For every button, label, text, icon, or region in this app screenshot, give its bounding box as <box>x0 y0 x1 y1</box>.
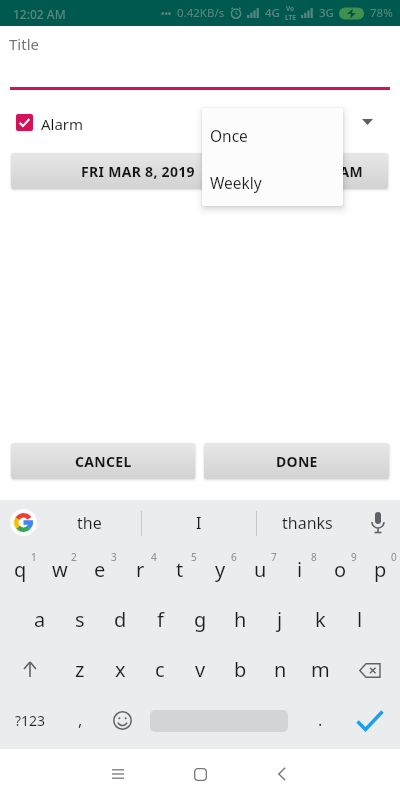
button[interactable] <box>100 695 144 745</box>
staticText: b <box>234 656 247 683</box>
button[interactable]: 12:02 AM <box>272 153 388 189</box>
staticText: ••• <box>161 7 172 19</box>
staticText: 7 <box>271 550 277 564</box>
button[interactable]: h <box>220 594 260 644</box>
button[interactable]: q <box>0 544 40 594</box>
button[interactable] <box>352 110 382 134</box>
button[interactable]: w <box>40 544 80 594</box>
button[interactable] <box>365 510 391 536</box>
staticText: a <box>34 606 46 633</box>
staticText: l <box>357 606 363 633</box>
button[interactable]: DONE <box>204 443 389 479</box>
staticText: Title <box>9 34 39 54</box>
staticText: Weekly <box>210 172 262 193</box>
staticText: t <box>176 556 184 583</box>
button[interactable]: m <box>300 644 340 694</box>
staticText: 4 <box>151 550 157 564</box>
staticText: CANCEL <box>75 452 132 471</box>
button[interactable] <box>340 695 400 745</box>
button[interactable]: a <box>20 594 60 644</box>
button[interactable] <box>262 754 302 794</box>
button[interactable]: . <box>300 695 340 745</box>
button[interactable]: y <box>200 544 240 594</box>
staticText: 5 <box>191 550 197 564</box>
button[interactable]: Alarm <box>16 114 84 131</box>
staticText: e <box>94 556 106 583</box>
button[interactable]: k <box>300 594 340 644</box>
staticText: q <box>14 556 27 583</box>
staticText: Vo <box>286 4 295 13</box>
button[interactable]: d <box>100 594 140 644</box>
button[interactable] <box>180 754 220 794</box>
button[interactable]: v <box>180 644 220 694</box>
button[interactable]: x <box>100 644 140 694</box>
staticText: i <box>297 556 303 583</box>
staticText: 8 <box>311 550 317 564</box>
staticText: m <box>311 656 330 683</box>
button[interactable] <box>0 645 60 695</box>
button[interactable]: i <box>280 544 320 594</box>
button[interactable]: the <box>48 500 130 545</box>
button[interactable]: j <box>260 594 300 644</box>
staticText: o <box>334 556 347 583</box>
button[interactable] <box>340 645 400 695</box>
button[interactable]: t <box>160 544 200 594</box>
staticText: LTE <box>285 13 296 22</box>
staticText: . <box>318 709 323 731</box>
button[interactable]: u <box>240 544 280 594</box>
staticText: w <box>52 556 68 583</box>
button[interactable]: FRI MAR 8, 2019 <box>11 153 265 189</box>
staticText: 2 <box>71 550 77 564</box>
staticText: 4G <box>265 5 280 21</box>
staticText: the <box>77 512 102 534</box>
staticText: 3G <box>319 5 334 21</box>
staticText: Once <box>210 125 248 146</box>
button[interactable]: CANCEL <box>11 443 195 479</box>
button[interactable]: Weekly <box>202 159 343 206</box>
button[interactable]: p <box>360 544 400 594</box>
staticText: ?123 <box>15 711 46 730</box>
button[interactable]: Once <box>202 112 343 159</box>
staticText: 0 <box>391 550 397 564</box>
button[interactable]: l <box>340 594 380 644</box>
button[interactable]: z <box>60 644 100 694</box>
staticText: Alarm <box>41 114 84 131</box>
staticText: k <box>315 606 326 633</box>
button[interactable]: o <box>320 544 360 594</box>
button[interactable]: r <box>120 544 160 594</box>
staticText: f <box>157 606 164 633</box>
button[interactable]: I <box>142 500 256 545</box>
button[interactable]: b <box>220 644 260 694</box>
staticText: x <box>115 656 126 683</box>
staticText: z <box>75 656 85 683</box>
button[interactable]: g <box>180 594 220 644</box>
button[interactable]: s <box>60 594 100 644</box>
button[interactable]: thanks <box>257 500 357 545</box>
button[interactable]: f <box>140 594 180 644</box>
staticText: h <box>234 606 247 633</box>
staticText: 6 <box>231 550 237 564</box>
staticText: r <box>136 556 145 583</box>
staticText: n <box>274 656 287 683</box>
button[interactable] <box>98 754 138 794</box>
staticText: I <box>196 512 202 534</box>
staticText: c <box>155 656 165 683</box>
staticText: 1 <box>31 550 37 564</box>
staticText: y <box>215 556 226 583</box>
staticText: v <box>195 656 206 683</box>
staticText: u <box>254 556 267 583</box>
staticText: thanks <box>282 512 333 534</box>
staticText: 12:02 AM <box>13 6 66 22</box>
button[interactable]: , <box>60 695 100 745</box>
button[interactable]: e <box>80 544 120 594</box>
button[interactable]: ?123 <box>0 695 60 745</box>
button[interactable]: c <box>140 644 180 694</box>
button[interactable]: n <box>260 644 300 694</box>
staticText: g <box>194 606 207 633</box>
staticText: s <box>75 606 85 633</box>
staticText: 9 <box>351 550 357 564</box>
staticText: , <box>78 709 83 731</box>
staticText: p <box>374 556 387 583</box>
staticText: 12:02 AM <box>298 162 363 181</box>
